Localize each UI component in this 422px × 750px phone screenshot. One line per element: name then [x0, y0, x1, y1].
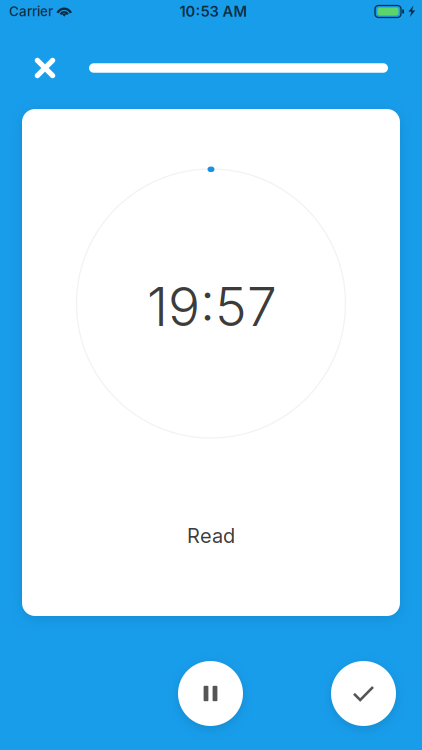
staticText: Read: [187, 524, 235, 548]
staticText: Carrier: [9, 4, 53, 19]
staticText: 19:57: [147, 275, 277, 338]
button[interactable]: Pause: [178, 661, 243, 726]
button[interactable]: Close: [23, 46, 67, 90]
button[interactable]: Done: [331, 661, 396, 726]
staticText: 10:53 AM: [179, 3, 247, 20]
